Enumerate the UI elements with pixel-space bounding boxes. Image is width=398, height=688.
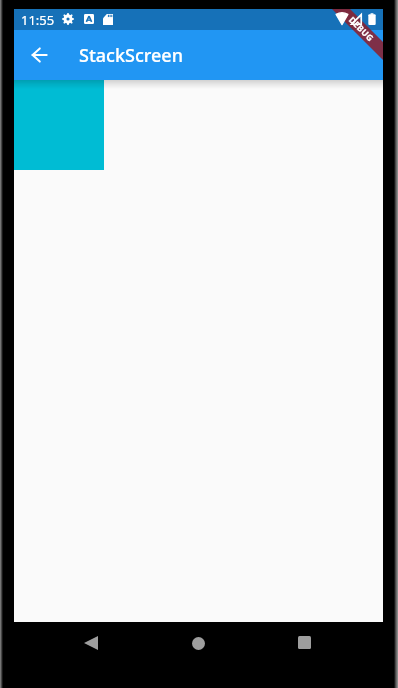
staticText: 11:55 (21, 11, 55, 29)
button[interactable]: Home (175, 621, 222, 666)
button[interactable]: Back (15, 31, 63, 79)
staticText: StackScreen (79, 43, 183, 68)
button[interactable]: Recents (281, 620, 328, 665)
button[interactable]: Back (67, 620, 114, 666)
staticText: DEBUG (346, 14, 377, 45)
